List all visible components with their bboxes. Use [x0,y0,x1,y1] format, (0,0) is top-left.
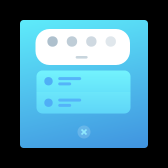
button[interactable]: Close [77,125,90,138]
button[interactable] [36,92,130,113]
button[interactable] [36,70,130,92]
